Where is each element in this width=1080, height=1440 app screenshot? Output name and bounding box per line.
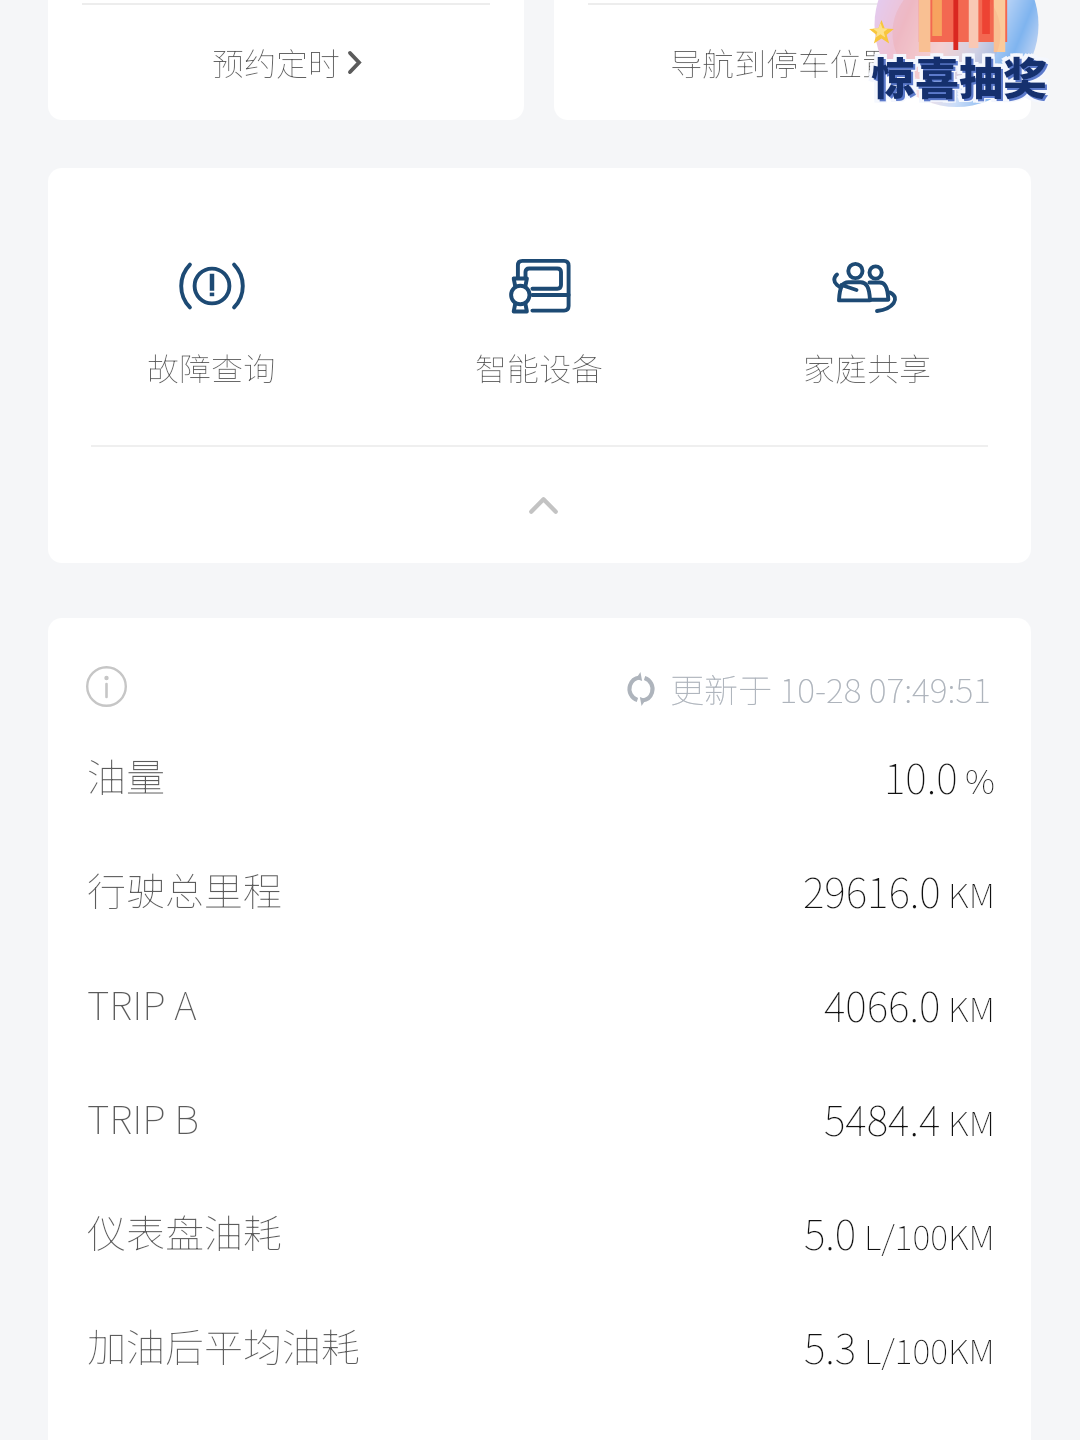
staticText: L/100KM: [864, 1325, 995, 1374]
button[interactable]: 惊喜抽奖: [871, 0, 1080, 108]
staticText: 加油后平均油耗: [87, 1317, 361, 1373]
button[interactable]: 仪表盘油耗: [87, 1174, 995, 1288]
staticText: 5.0: [804, 1202, 857, 1261]
staticText: 惊喜抽奖: [873, 46, 1049, 110]
staticText: 惊喜抽奖: [871, 41, 1047, 105]
staticText: 仪表盘油耗: [87, 1203, 283, 1259]
button[interactable]: 加油后平均油耗: [87, 1288, 995, 1402]
staticText: 行驶总里程: [87, 861, 283, 917]
staticText: KM: [948, 869, 995, 918]
staticText: 29616.0: [803, 860, 941, 919]
staticText: 惊喜抽奖: [868, 47, 1044, 111]
staticText: 油量: [87, 747, 166, 803]
staticText: 惊喜抽奖: [871, 47, 1047, 111]
staticText: 惊喜抽奖: [871, 44, 1047, 108]
staticText: TRIP A: [87, 975, 197, 1031]
staticText: 家庭共享: [803, 344, 932, 390]
staticText: 导航到停车位置: [670, 39, 895, 85]
button[interactable]: 导航到停车位置: [554, 0, 1031, 120]
button[interactable]: 油量: [87, 718, 995, 832]
staticText: 惊喜抽奖: [874, 41, 1050, 105]
staticText: 惊喜抽奖: [874, 44, 1050, 108]
button[interactable]: TRIP A: [87, 946, 995, 1060]
staticText: 预约定时: [212, 39, 341, 85]
staticText: 惊喜抽奖: [874, 47, 1050, 111]
button[interactable]: 家庭共享: [703, 259, 1031, 390]
staticText: 10.0: [884, 746, 958, 805]
button[interactable]: 预约定时: [48, 0, 524, 120]
staticText: 故障查询: [147, 344, 276, 390]
staticText: 4066.0: [824, 974, 941, 1033]
button[interactable]: Info: [78, 658, 134, 714]
staticText: 5.3: [804, 1316, 857, 1375]
staticText: %: [965, 755, 995, 804]
button[interactable]: 行驶总里程: [87, 832, 995, 946]
staticText: 惊喜抽奖: [868, 44, 1044, 108]
staticText: KM: [948, 983, 995, 1032]
button[interactable]: 智能设备: [375, 259, 703, 390]
button[interactable]: TRIP B: [87, 1060, 995, 1174]
button[interactable]: 故障查询: [48, 259, 375, 390]
staticText: 5484.4: [824, 1088, 941, 1147]
staticText: KM: [948, 1097, 995, 1146]
staticText: L/100KM: [864, 1211, 995, 1260]
staticText: 智能设备: [475, 344, 604, 390]
staticText: 惊喜抽奖: [868, 41, 1044, 105]
staticText: 更新于 10-28 07:49:51: [670, 664, 991, 713]
button[interactable]: Collapse: [503, 465, 583, 545]
staticText: TRIP B: [87, 1089, 199, 1145]
